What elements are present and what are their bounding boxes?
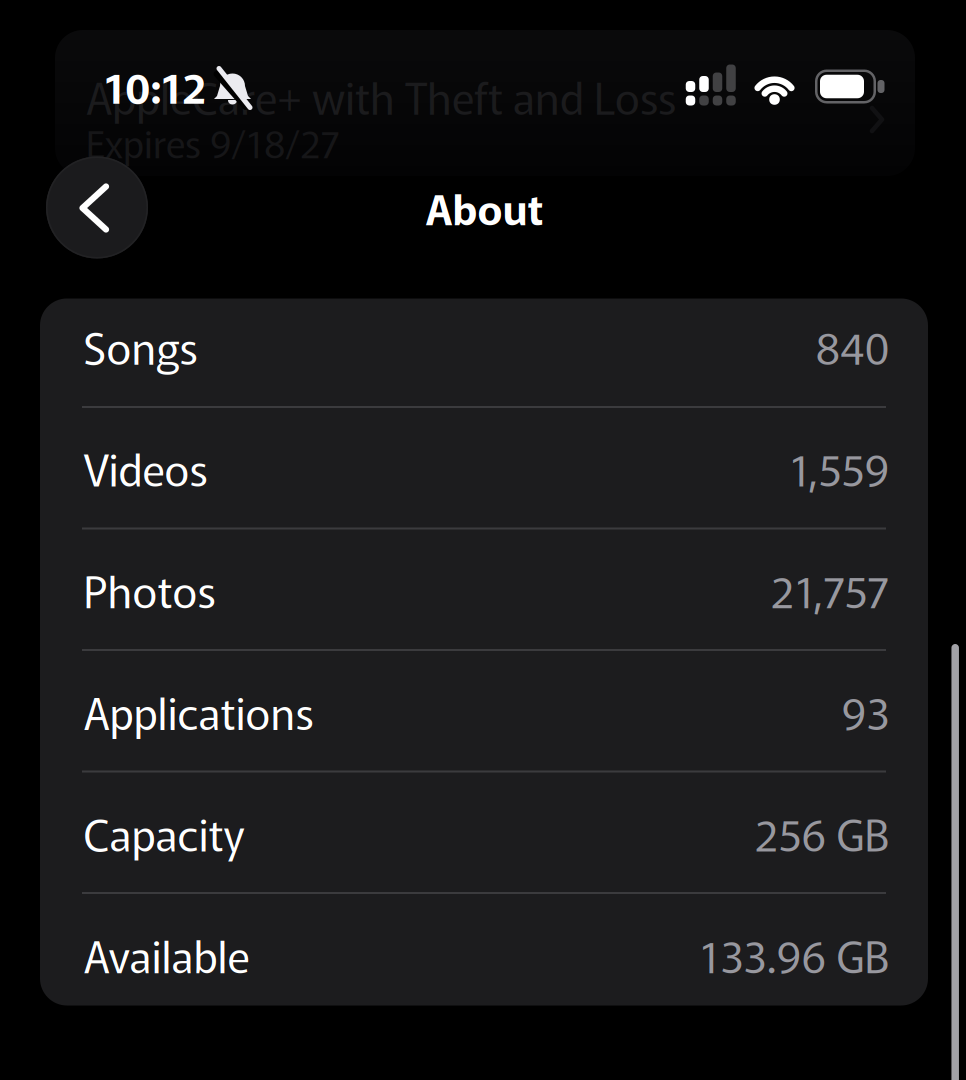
staticText: 93 bbox=[841, 680, 889, 742]
staticText: 840 bbox=[815, 315, 889, 377]
staticText: Expires 9/18/27 bbox=[86, 115, 340, 169]
staticText: Songs bbox=[83, 315, 197, 377]
staticText: About bbox=[425, 177, 543, 237]
staticText: 21,757 bbox=[770, 558, 889, 621]
staticText: Applications bbox=[83, 680, 313, 742]
staticText: 1,559 bbox=[789, 436, 889, 499]
staticText: Available bbox=[83, 923, 249, 986]
staticText: Photos bbox=[83, 558, 215, 621]
staticText: Capacity bbox=[83, 802, 244, 864]
staticText: 133.96 GB bbox=[699, 923, 889, 986]
staticText: 10:12 bbox=[104, 55, 206, 116]
staticText: 256 GB bbox=[754, 802, 889, 864]
staticText: Videos bbox=[83, 436, 207, 499]
staticText: AppleCare+ with Theft and Loss bbox=[86, 65, 676, 127]
button[interactable]: Back bbox=[46, 156, 148, 258]
